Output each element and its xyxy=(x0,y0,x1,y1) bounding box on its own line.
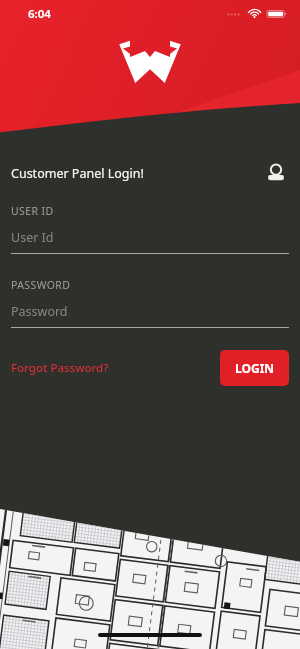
staticText: USER ID xyxy=(11,204,54,218)
staticText: Customer Panel Login! xyxy=(11,165,144,182)
staticText: PASSWORD xyxy=(11,278,71,292)
staticText: Forgot Password? xyxy=(11,360,109,376)
button[interactable]: PASSWORD xyxy=(11,278,289,328)
staticText: Password xyxy=(11,303,68,320)
button[interactable]: LOGIN xyxy=(220,350,289,386)
button[interactable]: Forgot Password? xyxy=(11,354,109,382)
staticText: 6:04 xyxy=(28,6,51,22)
button[interactable]: USER ID xyxy=(11,204,289,254)
button[interactable]: Account xyxy=(263,160,289,186)
staticText: LOGIN xyxy=(235,360,275,376)
staticText: User Id xyxy=(11,229,54,246)
